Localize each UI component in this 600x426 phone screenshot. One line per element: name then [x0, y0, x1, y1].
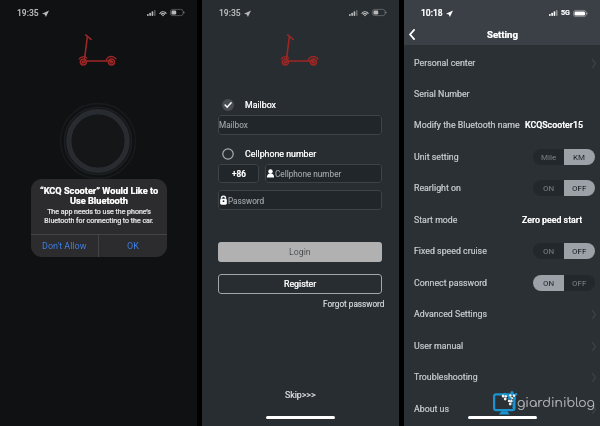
- staticText: “KCQ Scooter” Would Like to Use Bluetoot…: [38, 185, 160, 206]
- button[interactable]: Mile: [533, 149, 595, 165]
- staticText: ON: [543, 184, 555, 193]
- staticText: Unit setting: [414, 152, 459, 162]
- staticText: Troubleshooting: [414, 372, 478, 382]
- button[interactable]: Fixed speed cruise: [404, 235, 600, 266]
- button[interactable]: Skip>>>: [285, 390, 316, 400]
- staticText: Cellphone number: [275, 169, 342, 179]
- staticText: KM: [573, 153, 586, 162]
- button[interactable]: Troubleshooting: [404, 361, 600, 392]
- staticText: OK: [127, 241, 139, 252]
- button[interactable]: Advanced Settings: [404, 298, 600, 329]
- button[interactable]: Modify the Bluetooth name: [404, 109, 600, 140]
- staticText: OFF: [572, 184, 587, 193]
- staticText: Setting: [487, 29, 518, 40]
- button[interactable]: Don't Allow: [31, 235, 98, 257]
- staticText: Register: [284, 279, 317, 289]
- button[interactable]: ON: [533, 180, 595, 196]
- button[interactable]: Login: [218, 242, 382, 262]
- button[interactable]: Personal center: [404, 47, 600, 78]
- button[interactable]: Password: [218, 190, 382, 210]
- staticText: Forgot password: [323, 299, 385, 309]
- button[interactable]: Cellphone number: [222, 148, 317, 160]
- staticText: Login: [289, 247, 311, 257]
- button[interactable]: Start mode: [404, 204, 600, 235]
- staticText: Fixed speed cruise: [414, 246, 487, 256]
- button[interactable]: Mailbox: [222, 99, 276, 111]
- staticText: Don't Allow: [42, 241, 87, 252]
- staticText: Mile: [541, 153, 557, 162]
- staticText: Start mode: [414, 215, 458, 225]
- staticText: KCQScooter15: [525, 120, 583, 130]
- staticText: Modify the Bluetooth name: [414, 120, 520, 130]
- staticText: Advanced Settings: [414, 309, 488, 319]
- button[interactable]: Cellphone number: [265, 164, 382, 183]
- staticText: 19:35: [17, 8, 39, 18]
- button[interactable]: User manual: [404, 330, 600, 361]
- staticText: OFF: [572, 279, 587, 288]
- staticText: ON: [543, 279, 555, 288]
- staticText: giardiniblog: [517, 396, 595, 410]
- staticText: Serial Number: [414, 89, 470, 99]
- staticText: 10:18: [421, 8, 443, 18]
- staticText: +86: [232, 169, 246, 179]
- staticText: User manual: [414, 341, 464, 351]
- staticText: 19:35: [219, 8, 241, 18]
- staticText: Zero peed start: [522, 215, 583, 225]
- button[interactable]: Rearlight on: [404, 172, 600, 203]
- staticText: Connect password: [414, 278, 488, 288]
- button[interactable]: ON: [533, 243, 595, 259]
- button[interactable]: +86: [218, 164, 259, 183]
- button[interactable]: Back: [402, 23, 422, 46]
- staticText: Skip>>>: [285, 390, 316, 400]
- staticText: OFF: [572, 247, 587, 256]
- button[interactable]: Mailbox: [218, 115, 382, 135]
- button[interactable]: Forgot password: [323, 299, 385, 309]
- button[interactable]: About us: [404, 393, 600, 424]
- staticText: Mailbox: [245, 100, 276, 110]
- staticText: Mailbox: [219, 120, 248, 130]
- staticText: The app needs to use the phone’s Bluetoo…: [38, 208, 160, 225]
- staticText: Personal center: [414, 58, 476, 68]
- staticText: 5G: [561, 9, 570, 17]
- staticText: ON: [543, 247, 555, 256]
- button[interactable]: ON: [533, 275, 595, 291]
- button[interactable]: Register: [218, 274, 382, 294]
- staticText: Cellphone number: [245, 149, 317, 159]
- staticText: Rearlight on: [414, 183, 461, 193]
- staticText: About us: [414, 404, 449, 414]
- button[interactable]: Serial Number: [404, 78, 600, 109]
- button[interactable]: OK: [99, 235, 167, 257]
- button[interactable]: Connect password: [404, 267, 600, 298]
- staticText: Password: [228, 196, 265, 206]
- button[interactable]: Unit setting: [404, 141, 600, 172]
